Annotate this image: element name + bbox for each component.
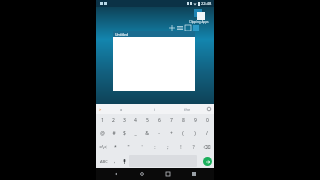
button[interactable]: 3 [119, 114, 130, 127]
button[interactable]: @ [97, 127, 108, 140]
staticText: Untitled [115, 32, 129, 37]
button[interactable]: / [201, 127, 213, 140]
staticText: > [99, 107, 102, 112]
button[interactable]: - [153, 127, 165, 140]
staticText: 2 [112, 117, 115, 124]
staticText: * [114, 144, 117, 151]
button[interactable]: ? [187, 140, 200, 154]
button[interactable]: Untitled [113, 31, 195, 91]
staticText: ! [180, 144, 182, 151]
staticText: 4 [134, 117, 137, 124]
button[interactable]: Screenshot [188, 168, 200, 180]
button[interactable]: ; [161, 140, 174, 154]
staticText: ) [194, 130, 196, 137]
staticText: 3 [123, 117, 126, 124]
button[interactable]: Emoji [96, 104, 104, 114]
staticText: 22:48 [201, 1, 212, 6]
button[interactable]: Enter [203, 157, 212, 166]
staticText: @ [100, 130, 105, 137]
staticText: & [145, 130, 149, 137]
button[interactable]: 1 [97, 114, 108, 127]
staticText: 1 [101, 117, 104, 124]
button[interactable]: + [165, 127, 177, 140]
button[interactable]: Voice input [120, 155, 128, 167]
button[interactable]: 0 [201, 114, 213, 127]
staticText: i [154, 107, 156, 112]
button[interactable]: More [204, 104, 214, 114]
button[interactable]: ) [189, 127, 201, 140]
button[interactable]: Menu [177, 25, 183, 31]
staticText: ? [192, 144, 195, 151]
button[interactable]: ⌫ [200, 140, 213, 154]
button[interactable]: 6 [153, 114, 165, 127]
button[interactable]: Back [110, 168, 122, 180]
button[interactable]: ' [135, 140, 148, 154]
staticText: + [170, 130, 173, 137]
button[interactable]: the [171, 104, 204, 114]
staticText: ' [141, 144, 143, 151]
button[interactable]: ! [174, 140, 187, 154]
button[interactable]: _ [130, 127, 141, 140]
button[interactable]: 9 [189, 114, 201, 127]
staticText: 7 [170, 117, 173, 124]
button[interactable]: =\< [97, 140, 109, 154]
staticText: 8 [182, 117, 185, 124]
staticText: ⌫ [203, 144, 211, 150]
staticText: ; [167, 144, 169, 151]
button[interactable]: Clipping Apps [189, 9, 209, 24]
staticText: : [154, 144, 156, 151]
staticText: " [127, 144, 130, 151]
button[interactable]: Move [169, 25, 175, 31]
button[interactable]: Window [185, 25, 191, 31]
staticText: 9 [194, 117, 197, 124]
staticText: ( [182, 130, 184, 137]
button[interactable]: 5 [141, 114, 153, 127]
button[interactable]: 2 [108, 114, 119, 127]
staticText: $ [123, 130, 126, 137]
staticText: / [206, 130, 208, 137]
staticText: ABC [100, 159, 108, 164]
button[interactable]: Recents [162, 168, 174, 180]
button[interactable]: ABC [98, 155, 110, 167]
staticText: =\< [99, 144, 107, 151]
staticText: 6 [158, 117, 161, 124]
button[interactable]: ( [177, 127, 189, 140]
staticText: # [112, 130, 116, 137]
button[interactable]: a [104, 104, 138, 114]
button[interactable]: , [111, 155, 119, 167]
button[interactable]: # [108, 127, 119, 140]
button[interactable]: 7 [165, 114, 177, 127]
button[interactable]: * [109, 140, 122, 154]
button[interactable]: " [122, 140, 135, 154]
staticText: _ [134, 130, 137, 137]
staticText: Clipping Apps [189, 20, 209, 24]
staticText: - [158, 130, 160, 137]
button[interactable]: & [141, 127, 153, 140]
button[interactable]: 8 [177, 114, 189, 127]
button[interactable]: Home [136, 168, 148, 180]
staticText: 5 [146, 117, 149, 124]
button[interactable]: : [148, 140, 161, 154]
button[interactable]: $ [119, 127, 130, 140]
staticText: 0 [206, 117, 209, 124]
button[interactable]: 4 [130, 114, 141, 127]
staticText: , [114, 158, 116, 165]
button[interactable]: i [138, 104, 171, 114]
staticText: the [184, 107, 191, 112]
staticText: a [120, 107, 123, 112]
